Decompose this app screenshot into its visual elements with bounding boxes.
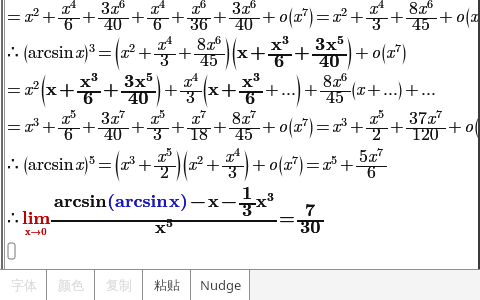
staticText: 3 — [153, 120, 162, 145]
staticText: 复制 — [106, 277, 132, 293]
staticText: x — [208, 187, 219, 212]
staticText: 6 — [215, 30, 222, 47]
staticText: ∴ — [7, 41, 19, 62]
staticText: x — [322, 150, 331, 175]
staticText: + — [262, 2, 276, 27]
staticText: ... — [383, 75, 398, 100]
staticText: 5 — [337, 30, 344, 47]
staticText: 2 — [341, 2, 348, 19]
staticText: x — [225, 142, 234, 167]
staticText: 6 — [367, 158, 376, 183]
staticText: + — [439, 2, 453, 27]
staticText: 4 — [159, 0, 166, 11]
staticText: o — [464, 112, 474, 137]
staticText: 3 — [228, 158, 237, 183]
staticText: 4 — [234, 142, 241, 159]
staticText: 120 — [412, 120, 439, 145]
staticText: arcsin — [54, 187, 107, 212]
staticText: 6 — [83, 84, 94, 109]
staticText: 5 — [337, 30, 344, 47]
staticText: + — [103, 75, 119, 100]
staticText: + — [262, 112, 276, 137]
staticText: + — [171, 112, 185, 137]
staticText: + — [42, 2, 56, 27]
staticText: ... — [421, 75, 436, 100]
staticText: − — [221, 187, 237, 212]
staticText: 3 — [91, 67, 98, 84]
staticText: x — [242, 67, 253, 92]
staticText: ) — [180, 187, 188, 212]
staticText: 5 — [378, 104, 385, 121]
staticText: 45 — [200, 46, 218, 71]
staticText: 2 — [372, 120, 381, 145]
staticText: + — [178, 38, 192, 63]
staticText: 3 — [160, 46, 169, 71]
staticText: 45 — [412, 10, 430, 35]
staticText: + — [390, 112, 404, 137]
staticText: 37 — [409, 104, 427, 129]
staticText: = — [316, 112, 330, 137]
button[interactable]: 复制 — [95, 269, 143, 300]
staticText: 3 — [33, 112, 40, 129]
staticText: + — [221, 75, 237, 100]
staticText: + — [171, 2, 185, 27]
staticText: 6 — [64, 10, 73, 35]
staticText: 3 — [186, 83, 195, 108]
staticText: + — [103, 75, 119, 100]
staticText: 4 — [192, 67, 199, 84]
staticText: 3 — [153, 120, 162, 145]
staticText: x — [155, 213, 166, 238]
staticText: ( — [107, 187, 115, 212]
staticText: 6 — [250, 0, 257, 11]
staticText: o — [464, 112, 474, 137]
staticText: x — [242, 67, 253, 92]
staticText: x — [369, 104, 378, 129]
staticText: 5 — [166, 142, 173, 159]
staticText: lim — [22, 204, 51, 229]
staticText: x — [157, 30, 166, 55]
button[interactable]: Nudge — [191, 269, 250, 300]
staticText: + — [206, 150, 220, 175]
staticText: + — [59, 75, 75, 100]
button[interactable]: 粘贴 — [143, 269, 191, 300]
staticText: x — [271, 30, 282, 55]
staticText: − — [190, 187, 206, 212]
staticText: x — [369, 104, 378, 129]
staticText: x — [356, 75, 365, 100]
staticText: + — [350, 112, 364, 137]
staticText: 3 — [232, 0, 241, 19]
button[interactable]: 颜色 — [47, 269, 95, 300]
staticText: 40 — [235, 10, 253, 35]
staticText: 7 — [436, 104, 443, 121]
staticText: 45 — [235, 120, 253, 145]
staticText: 5 — [331, 150, 338, 167]
staticText: ... — [383, 75, 398, 100]
staticText: 6 — [119, 0, 126, 11]
staticText: + — [42, 2, 56, 27]
staticText: x — [61, 104, 70, 129]
staticText: = — [306, 150, 320, 175]
staticText: + — [439, 2, 453, 27]
staticText: x — [75, 150, 84, 175]
staticText: ( — [107, 187, 115, 212]
staticText: 6 — [341, 67, 348, 84]
staticText: 5 — [89, 150, 96, 167]
staticText: 6 — [245, 84, 256, 109]
staticText: + — [405, 75, 419, 100]
staticText: 6 — [341, 67, 348, 84]
staticText: lim — [22, 204, 51, 229]
button[interactable]: 字体 — [0, 269, 47, 300]
staticText: x — [80, 67, 91, 92]
staticText: 40 — [104, 120, 122, 145]
staticText: 2 — [160, 158, 169, 183]
staticText: + — [103, 75, 119, 100]
staticText: x — [332, 67, 341, 92]
staticText: 7 — [119, 104, 126, 121]
staticText: + — [138, 38, 152, 63]
staticText: = — [7, 112, 21, 137]
staticText: 6 — [64, 120, 73, 145]
staticText: x — [283, 150, 292, 175]
staticText: + — [82, 112, 96, 137]
staticText: x — [110, 0, 119, 19]
staticText: arcsin — [115, 187, 168, 212]
